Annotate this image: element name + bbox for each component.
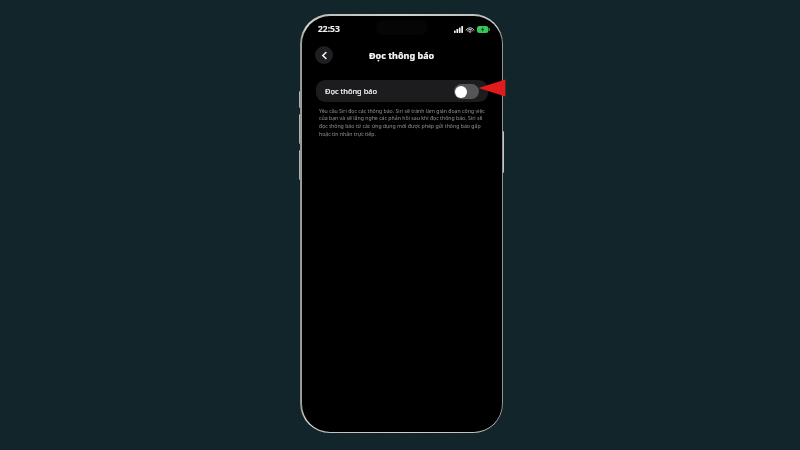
staticText: 22:53 (318, 23, 340, 35)
button[interactable]: Đọc thông báo (316, 80, 488, 102)
button[interactable]: Back (315, 46, 333, 64)
staticText: Đọc thông báo (369, 49, 435, 61)
staticText: Đọc thông báo (325, 86, 377, 96)
button[interactable]: Đọc thông báo toggle, off (454, 84, 479, 99)
staticText: Yêu cầu Siri đọc các thông báo. Siri sẽ … (319, 107, 485, 137)
